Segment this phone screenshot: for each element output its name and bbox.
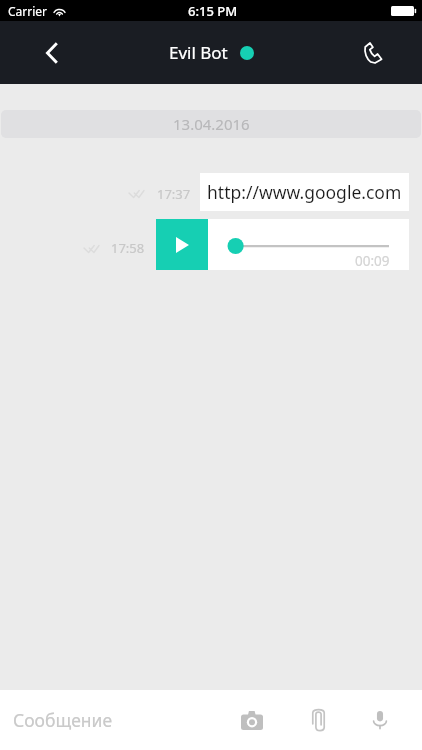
staticText: 13.04.2016 [173,114,250,134]
staticText: Carrier [8,3,48,19]
button[interactable]: Back [32,33,72,73]
staticText: 6:15 PM [188,2,238,20]
staticText: Evil Bot [169,41,228,64]
button[interactable]: Camera [232,700,272,740]
button[interactable]: Play [156,219,208,270]
staticText: 17:58 [111,239,145,257]
button[interactable]: Voice message [360,700,400,740]
staticText: Сообщение [13,708,113,732]
staticText: 17:37 [157,185,191,203]
button[interactable]: Attach file [298,700,338,740]
button[interactable]: Call [353,33,393,73]
button[interactable]: http://www.google.com [200,173,409,211]
staticText: http://www.google.com [207,180,402,204]
staticText: 00:09 [355,252,390,270]
